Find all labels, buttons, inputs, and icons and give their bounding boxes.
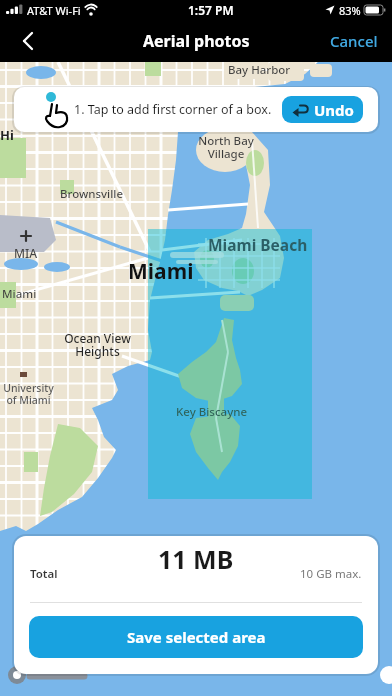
staticText: 83% [339, 3, 361, 18]
staticText: North Bay Village [198, 133, 254, 161]
staticText: 1:57 PM [188, 2, 234, 18]
staticText: 11 MB [158, 542, 234, 576]
staticText: Ocean View Heights [64, 330, 131, 360]
staticText: Bay Harbor [228, 62, 291, 78]
staticText: Save selected area [127, 627, 266, 647]
staticText: Brownsville [60, 186, 124, 202]
staticText: Miami [128, 257, 194, 286]
staticText: Key Biscayne [176, 404, 248, 420]
button[interactable]: Undo [282, 96, 363, 123]
staticText: University of Miami [3, 381, 54, 407]
staticText: Miami [2, 286, 37, 302]
staticText: Hi [0, 126, 14, 144]
staticText: 1. Tap to add first corner of a box. [74, 101, 272, 118]
button[interactable] [12, 25, 44, 57]
staticText: 10 GB max. [300, 566, 362, 582]
button[interactable]: Save selected area [29, 616, 363, 658]
staticText: Cancel [330, 31, 378, 51]
staticText: Total [30, 566, 58, 582]
staticText: AT&T Wi-Fi [27, 3, 81, 18]
button[interactable]: Cancel [330, 31, 378, 51]
staticText: Aerial photos [143, 30, 250, 52]
staticText: Undo [314, 100, 354, 120]
staticText: Miami Beach [208, 234, 308, 255]
staticText: MIA [14, 245, 38, 261]
